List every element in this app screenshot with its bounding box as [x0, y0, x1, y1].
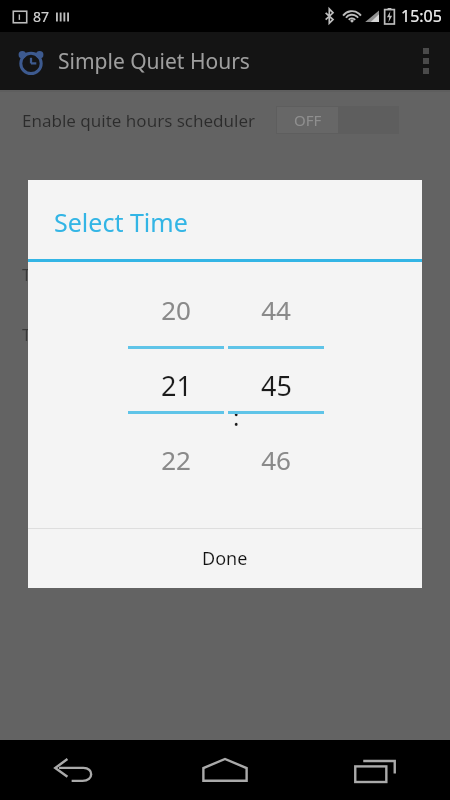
staticText: Select Time — [54, 205, 188, 239]
staticText: 46 — [261, 442, 291, 477]
staticText: Done — [202, 546, 248, 571]
button[interactable]: 44 — [228, 262, 324, 528]
staticText: T — [22, 264, 31, 286]
staticText: 15:05 — [401, 5, 442, 27]
staticText: Simple Quiet Hours — [58, 47, 250, 76]
button[interactable]: Back — [0, 740, 150, 800]
button[interactable]: 20 — [128, 262, 224, 528]
button[interactable]: Done — [28, 529, 422, 588]
button[interactable]: Enable quite hours scheduler — [0, 92, 450, 148]
staticText: Enable quite hours scheduler — [22, 109, 256, 132]
staticText: T — [22, 324, 31, 346]
button[interactable]: Enable quiet hours scheduler toggle — [276, 106, 399, 134]
staticText: 21 — [161, 367, 192, 404]
button[interactable]: Recent apps — [300, 740, 450, 800]
button[interactable]: More options — [402, 32, 450, 90]
staticText: OFF — [294, 110, 322, 130]
button[interactable]: Home — [150, 740, 300, 800]
staticText: 87 — [33, 7, 50, 26]
staticText: 45 — [261, 367, 292, 404]
staticText: 44 — [261, 292, 291, 327]
staticText: 22 — [161, 442, 191, 477]
staticText: : — [233, 400, 240, 433]
staticText: 20 — [161, 292, 191, 327]
